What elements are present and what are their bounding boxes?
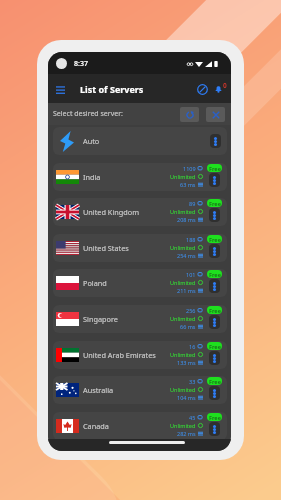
staticText: 8:37: [74, 59, 88, 69]
staticText: Singapore: [83, 314, 118, 324]
staticText: 1109: [183, 165, 196, 172]
staticText: 254 ms: [177, 252, 196, 259]
button[interactable]: United States: [53, 234, 227, 262]
staticText: 63 ms: [180, 181, 196, 188]
staticText: Unlimited: [170, 351, 196, 358]
staticText: Canada: [83, 421, 109, 431]
button[interactable]: More options: [209, 244, 220, 258]
button[interactable]: Australia: [53, 376, 227, 404]
button[interactable]: Free: [207, 164, 222, 172]
staticText: Free: [209, 414, 221, 421]
staticText: 256: [186, 307, 196, 314]
button[interactable]: Free: [207, 413, 222, 421]
button[interactable]: United Arab Emirates: [53, 341, 227, 369]
button[interactable]: Poland: [53, 269, 227, 297]
staticText: Unlimited: [170, 422, 196, 429]
staticText: 211 ms: [177, 287, 196, 294]
staticText: Unlimited: [170, 173, 196, 180]
staticText: Australia: [83, 385, 114, 395]
button[interactable]: Free: [207, 306, 222, 314]
button[interactable]: United Kingdom: [53, 198, 227, 226]
staticText: 104 ms: [177, 394, 196, 401]
button[interactable]: More options: [210, 134, 221, 148]
button[interactable]: More options: [209, 279, 220, 293]
button[interactable]: Canada: [53, 412, 227, 440]
button[interactable]: More options: [209, 386, 220, 400]
staticText: Auto: [83, 136, 100, 146]
staticText: 89: [189, 200, 196, 207]
button[interactable]: More options: [209, 315, 220, 329]
button[interactable]: Singapore: [53, 305, 227, 333]
staticText: Select desired server:: [53, 109, 123, 119]
staticText: Free: [209, 200, 221, 207]
staticText: India: [83, 172, 101, 182]
button[interactable]: Close: [206, 107, 225, 122]
staticText: United Kingdom: [83, 207, 139, 217]
button[interactable]: More options: [209, 422, 220, 436]
button[interactable]: VPN disabled: [194, 81, 210, 97]
staticText: 16: [189, 343, 196, 350]
staticText: Free: [209, 343, 221, 350]
staticText: 282 ms: [177, 430, 196, 437]
button[interactable]: India: [53, 163, 227, 191]
button[interactable]: Refresh: [180, 107, 199, 122]
button[interactable]: Menu: [52, 81, 68, 97]
staticText: 66 ms: [180, 323, 196, 330]
staticText: 208 ms: [177, 216, 196, 223]
button[interactable]: More options: [209, 173, 220, 187]
staticText: Unlimited: [170, 315, 196, 322]
staticText: 133 ms: [177, 359, 196, 366]
staticText: Free: [209, 236, 221, 243]
staticText: 45: [189, 414, 196, 421]
staticText: Unlimited: [170, 244, 196, 251]
button[interactable]: More options: [209, 208, 220, 222]
staticText: 101: [186, 271, 196, 278]
staticText: United States: [83, 243, 129, 253]
staticText: Free: [209, 271, 221, 278]
button[interactable]: Free: [207, 235, 222, 243]
button[interactable]: Notifications: [211, 82, 225, 96]
staticText: Poland: [83, 278, 107, 288]
button[interactable]: Auto: [53, 127, 227, 155]
staticText: 33: [189, 378, 196, 385]
staticText: 0: [223, 81, 227, 90]
staticText: United Arab Emirates: [83, 350, 156, 360]
staticText: Unlimited: [170, 386, 196, 393]
button[interactable]: Free: [207, 342, 222, 350]
button[interactable]: Free: [207, 377, 222, 385]
staticText: Free: [209, 165, 221, 172]
button[interactable]: Free: [207, 199, 222, 207]
staticText: List of Servers: [80, 83, 144, 95]
staticText: Free: [209, 307, 221, 314]
button[interactable]: More options: [209, 351, 220, 365]
staticText: Free: [209, 378, 221, 385]
staticText: 188: [186, 236, 196, 243]
button[interactable]: Free: [207, 270, 222, 278]
staticText: Unlimited: [170, 279, 196, 286]
staticText: Unlimited: [170, 208, 196, 215]
